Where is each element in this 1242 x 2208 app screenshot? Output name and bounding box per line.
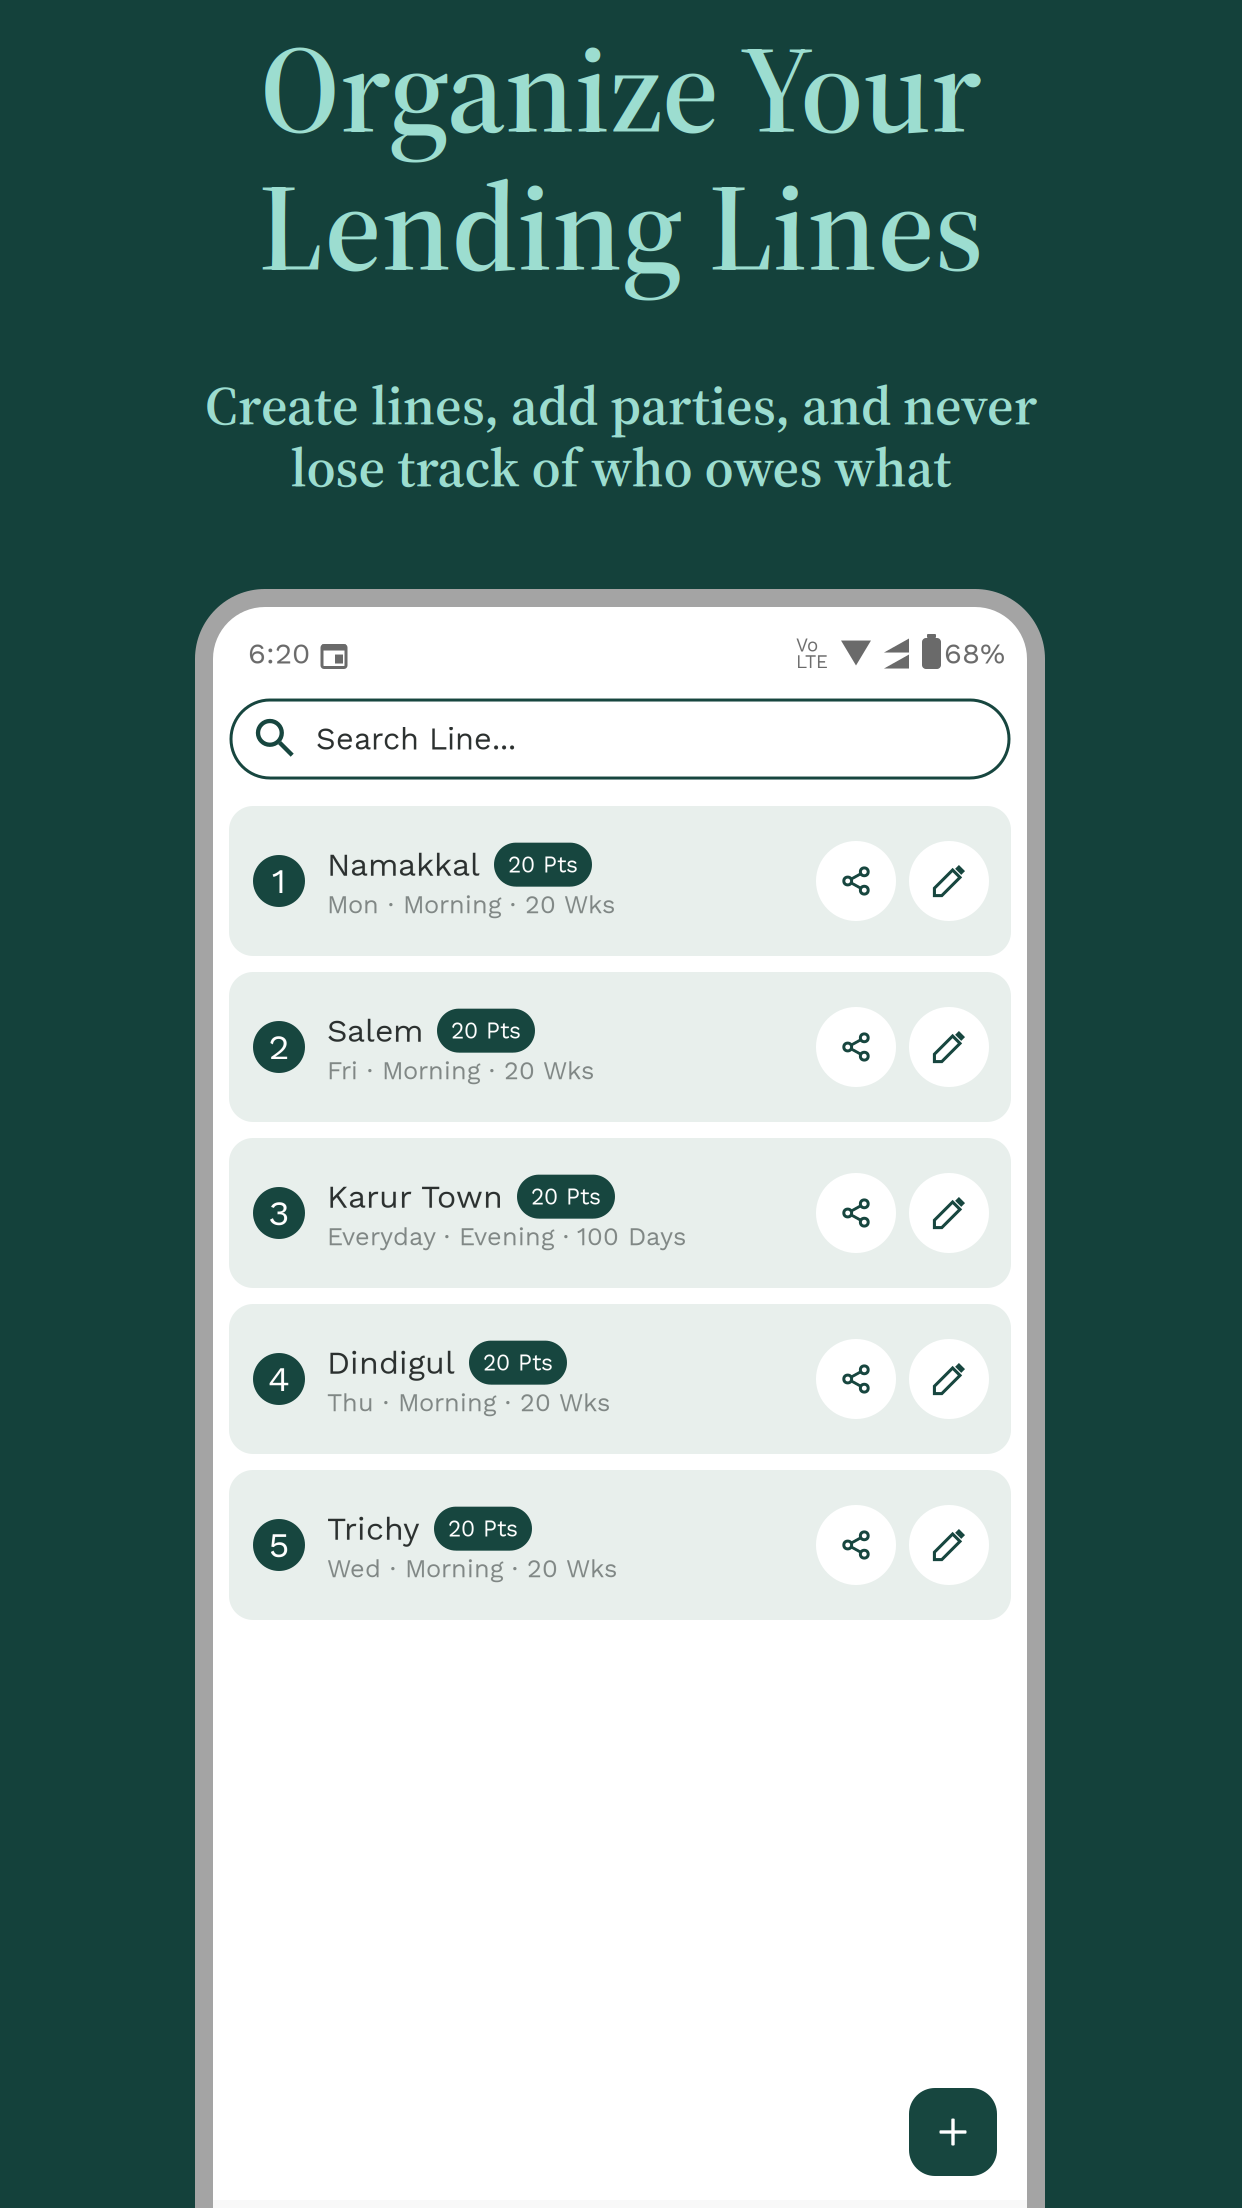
button[interactable]: Share line <box>816 1339 896 1419</box>
staticText: Vo <box>796 634 818 656</box>
staticText: Everyday · Evening · 100 Days <box>327 1222 686 1251</box>
button[interactable]: Edit line <box>909 1007 989 1087</box>
staticText: Trichy <box>327 1510 420 1547</box>
staticText: Mon · Morning · 20 Wks <box>327 890 615 919</box>
staticText: 20 Pts <box>508 851 578 878</box>
button[interactable]: Share line <box>816 1173 896 1253</box>
button[interactable]: Edit line <box>909 841 989 921</box>
staticText: Wed · Morning · 20 Wks <box>327 1554 617 1583</box>
staticText: 20 Pts <box>483 1349 553 1376</box>
staticText: Karur Town <box>327 1178 503 1215</box>
button[interactable]: Share line <box>816 841 896 921</box>
staticText: Salem <box>327 1012 423 1049</box>
button[interactable]: Add line <box>909 2088 997 2176</box>
staticText: 3 <box>268 1192 289 1234</box>
staticText: Lending Lines <box>258 141 983 311</box>
button[interactable]: Edit line <box>909 1173 989 1253</box>
staticText: 20 Pts <box>531 1183 601 1210</box>
button[interactable]: Edit line <box>909 1505 989 1585</box>
staticText: Dindigul <box>327 1344 455 1381</box>
staticText: Thu · Morning · 20 Wks <box>327 1388 610 1417</box>
staticText: 20 Pts <box>448 1515 518 1542</box>
staticText: 1 <box>272 860 286 902</box>
staticText: lose track of who owes what <box>290 429 951 504</box>
staticText: 2 <box>268 1026 289 1068</box>
button[interactable]: Edit line <box>909 1339 989 1419</box>
staticText: 68% <box>944 636 1005 671</box>
button[interactable]: 4 <box>229 1304 1011 1454</box>
staticText: 6:20 <box>248 636 310 671</box>
button[interactable]: 1 <box>229 806 1011 956</box>
staticText: Fri · Morning · 20 Wks <box>327 1056 594 1085</box>
button[interactable]: Share line <box>816 1007 896 1087</box>
button[interactable]: Share line <box>816 1505 896 1585</box>
staticText: Create lines, add parties, and never <box>205 367 1037 442</box>
button[interactable]: 5 <box>229 1470 1011 1620</box>
staticText: 20 Pts <box>451 1017 521 1044</box>
button[interactable]: Search Line... <box>231 700 1009 778</box>
staticText: Organize Your <box>260 3 982 173</box>
staticText: 4 <box>268 1358 290 1400</box>
button[interactable]: 3 <box>229 1138 1011 1288</box>
staticText: Namakkal <box>327 846 480 883</box>
staticText: LTE <box>796 651 828 673</box>
button[interactable]: 2 <box>229 972 1011 1122</box>
staticText: 5 <box>268 1524 289 1566</box>
staticText: Search Line... <box>316 721 516 757</box>
